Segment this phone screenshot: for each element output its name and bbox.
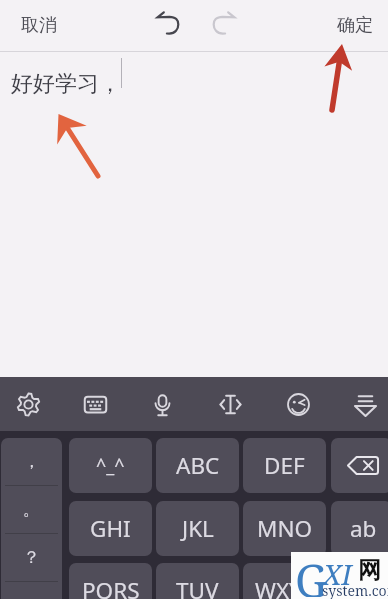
- button[interactable]: TUV: [156, 563, 239, 599]
- button[interactable]: Redo: [202, 1, 246, 45]
- staticText: ？: [23, 547, 40, 568]
- button[interactable]: Keyboard layout: [64, 377, 126, 431]
- button[interactable]: Undo: [146, 1, 190, 45]
- button[interactable]: Backspace: [331, 438, 388, 493]
- button[interactable]: JKL: [156, 501, 239, 556]
- staticText: 好好学习，: [11, 70, 121, 98]
- staticText: WXYZ: [255, 575, 315, 599]
- staticText: ^_^: [96, 453, 125, 478]
- button[interactable]: Hide keyboard: [334, 377, 388, 431]
- button[interactable]: PQRS: [69, 563, 152, 599]
- button[interactable]: 。: [1, 486, 62, 533]
- button[interactable]: Settings: [0, 377, 59, 431]
- button[interactable]: Emoji: [267, 377, 329, 431]
- button[interactable]: ab: [331, 501, 388, 556]
- staticText: 网: [358, 556, 381, 585]
- staticText: system.com: [322, 581, 388, 599]
- button[interactable]: 取消: [0, 2, 75, 49]
- button[interactable]: ABC: [156, 438, 239, 493]
- staticText: JKL: [182, 513, 214, 544]
- button[interactable]: GHI: [69, 501, 152, 556]
- button[interactable]: MNO: [243, 501, 326, 556]
- staticText: ab: [350, 513, 377, 544]
- button[interactable]: 确定: [319, 2, 388, 49]
- button[interactable]: ^_^: [69, 438, 152, 493]
- staticText: MNO: [257, 513, 313, 544]
- staticText: ，: [23, 451, 40, 472]
- staticText: 取消: [21, 14, 57, 37]
- button[interactable]: [331, 563, 388, 599]
- staticText: 。: [23, 499, 40, 520]
- button[interactable]: Voice input: [131, 377, 193, 431]
- staticText: G: [295, 550, 328, 597]
- button[interactable]: Move cursor: [199, 377, 261, 431]
- staticText: ABC: [176, 450, 220, 481]
- button[interactable]: DEF: [243, 438, 326, 493]
- staticText: TUV: [176, 575, 219, 599]
- staticText: DEF: [264, 450, 305, 481]
- staticText: GHI: [90, 513, 131, 544]
- staticText: XI: [323, 555, 352, 593]
- button[interactable]: ，: [1, 438, 62, 485]
- button[interactable]: ？: [1, 534, 62, 581]
- staticText: 确定: [337, 14, 373, 37]
- staticText: PQRS: [82, 575, 140, 599]
- button[interactable]: WXYZ: [243, 563, 326, 599]
